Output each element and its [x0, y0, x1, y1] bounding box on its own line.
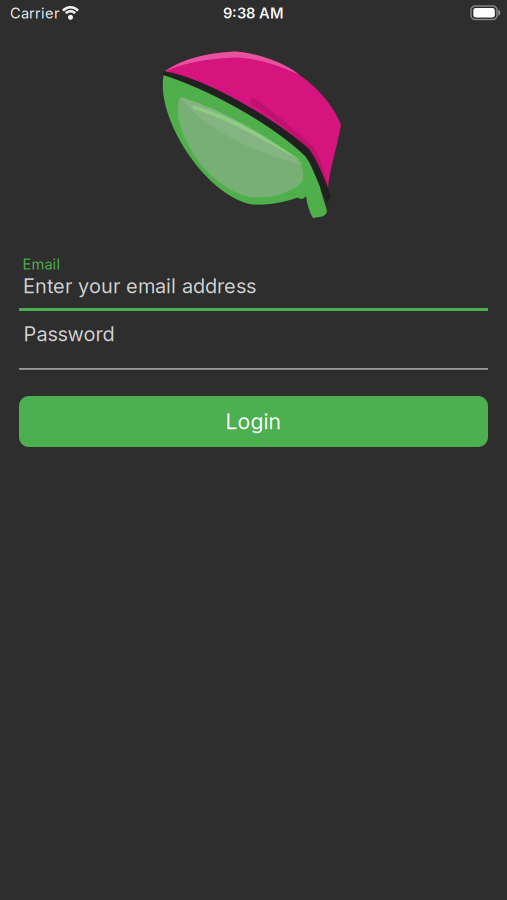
staticText: Carrier	[10, 4, 60, 22]
staticText: Email	[22, 255, 60, 273]
staticText: Password	[23, 322, 114, 346]
button[interactable]: Email	[19, 272, 488, 311]
button[interactable]: Login	[19, 396, 488, 447]
staticText: 9:38 AM	[223, 4, 284, 22]
staticText: Enter your email address	[23, 274, 256, 298]
staticText: Login	[225, 409, 281, 434]
button[interactable]: Password	[19, 322, 488, 370]
